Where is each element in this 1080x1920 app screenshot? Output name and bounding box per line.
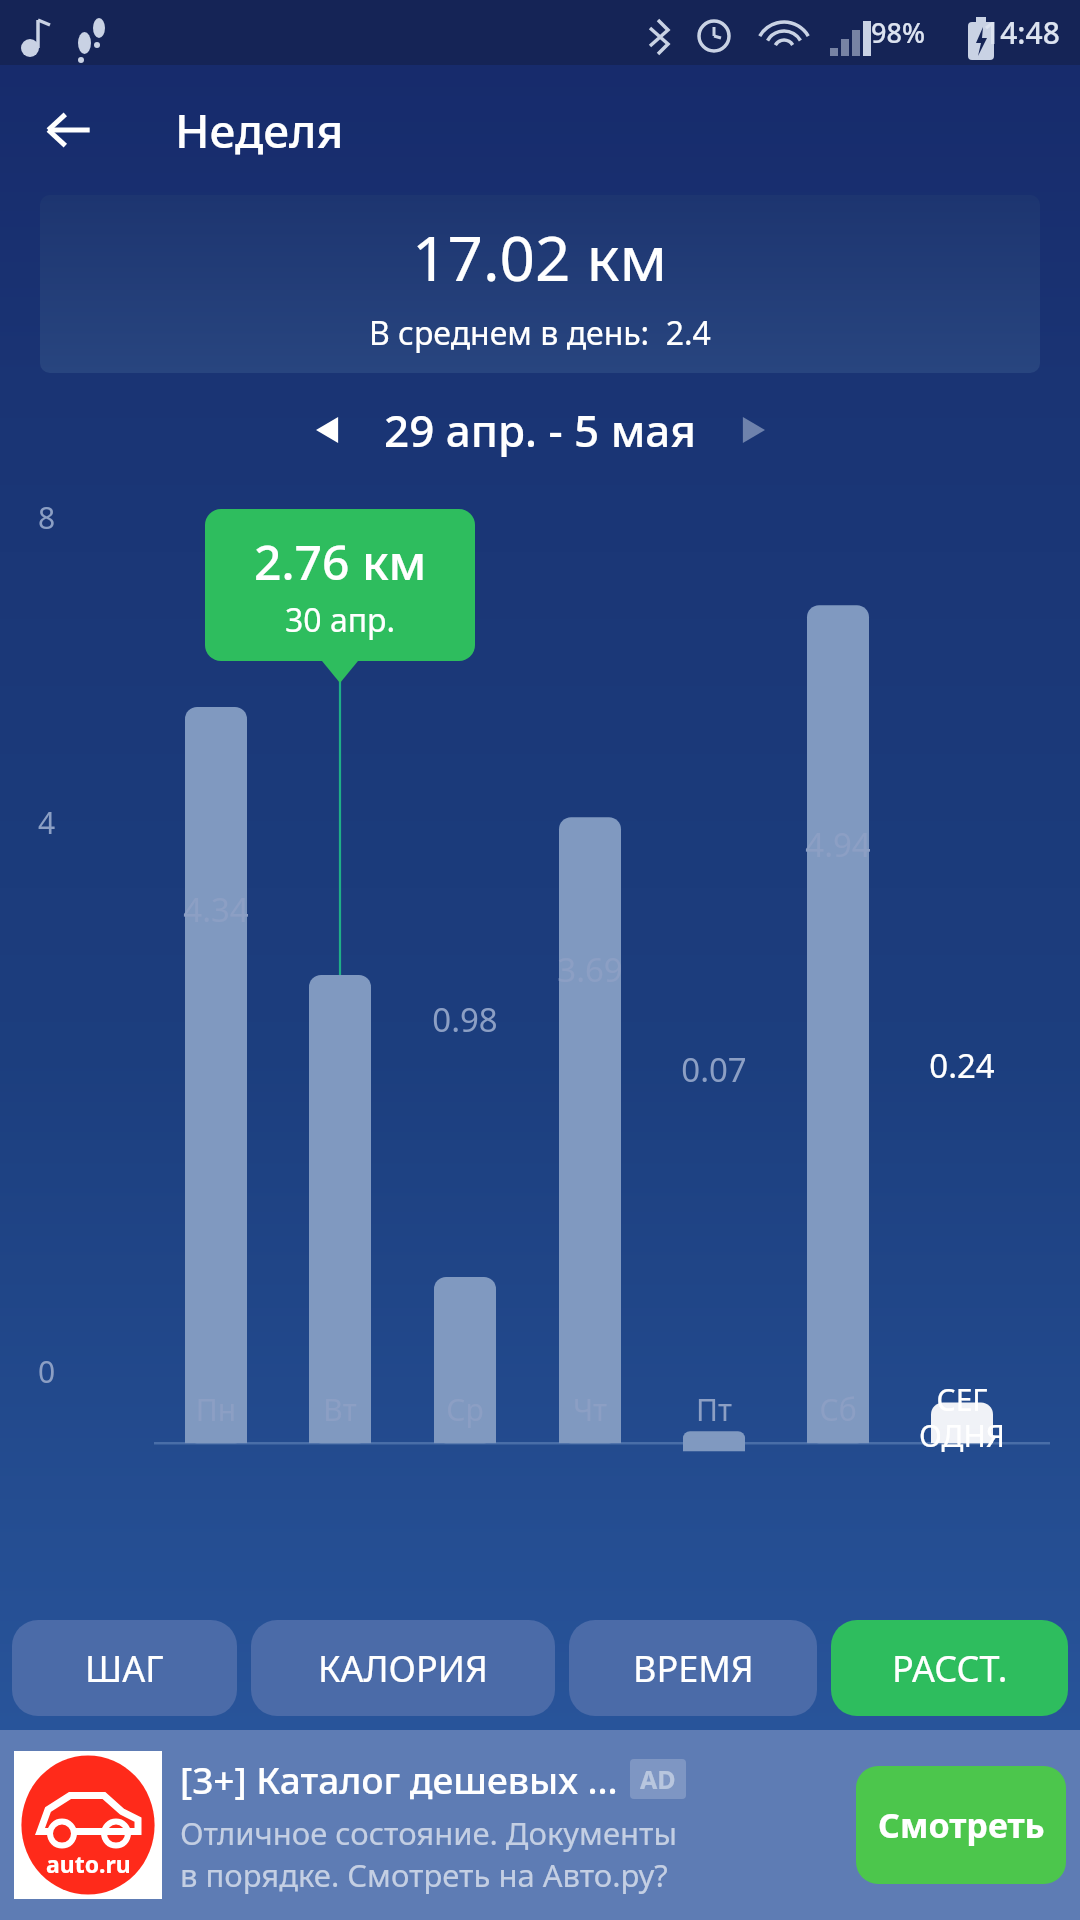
staticText: 4 xyxy=(38,802,56,843)
button[interactable]: Смотреть xyxy=(856,1766,1066,1884)
staticText: 0.24 xyxy=(902,1043,1022,1088)
button[interactable]: auto.ru xyxy=(14,1730,1066,1920)
staticText: 8 xyxy=(38,497,56,538)
button[interactable]: Previous week xyxy=(292,393,366,467)
staticText: 98% xyxy=(871,14,925,51)
staticText: Пт xyxy=(654,1389,774,1430)
staticText: 3.69 xyxy=(530,947,650,992)
staticText: Смотреть xyxy=(878,1802,1045,1848)
staticText: СЕГ ОДНЯ xyxy=(892,1379,1032,1456)
staticText: Ср xyxy=(405,1389,525,1430)
staticText: [3+] Каталог дешевых ... xyxy=(180,1754,618,1804)
staticText: Сб xyxy=(778,1389,898,1430)
staticText: 4.94 xyxy=(778,822,898,867)
staticText: В среднем в день: 2.4 xyxy=(369,311,711,355)
staticText: 30 апр. xyxy=(285,598,396,642)
staticText: 0.98 xyxy=(405,997,525,1042)
staticText: Чт xyxy=(530,1389,650,1430)
button[interactable]: 29 апр. - 5 мая xyxy=(384,400,697,460)
button[interactable]: 2.76 км xyxy=(205,509,475,661)
button[interactable]: ШАГ xyxy=(12,1620,237,1716)
staticText: 17.02 км xyxy=(412,215,668,299)
button[interactable]: Back xyxy=(30,91,108,169)
button[interactable]: РАССТ. xyxy=(831,1620,1068,1716)
staticText: 0 xyxy=(38,1351,56,1392)
staticText: ШАГ xyxy=(85,1644,164,1693)
button[interactable]: КАЛОРИЯ xyxy=(251,1620,555,1716)
button[interactable]: 17.02 км xyxy=(40,195,1040,373)
staticText: 0.07 xyxy=(654,1047,774,1092)
button[interactable]: Next week xyxy=(715,393,789,467)
staticText: Отличное состояние. Документы в порядке.… xyxy=(180,1812,677,1896)
staticText: 2.76 км xyxy=(254,529,427,594)
staticText: Неделя xyxy=(175,99,344,162)
staticText: РАССТ. xyxy=(892,1644,1008,1693)
button[interactable]: ВРЕМЯ xyxy=(569,1620,817,1716)
staticText: Вт xyxy=(280,1389,400,1430)
staticText: 14:48 xyxy=(983,12,1060,53)
staticText: auto.ru xyxy=(46,1848,131,1879)
staticText: 4.34 xyxy=(156,887,276,932)
staticText: ВРЕМЯ xyxy=(633,1644,754,1693)
staticText: КАЛОРИЯ xyxy=(318,1644,488,1693)
staticText: AD xyxy=(640,1762,676,1796)
staticText: Пн xyxy=(156,1389,276,1430)
